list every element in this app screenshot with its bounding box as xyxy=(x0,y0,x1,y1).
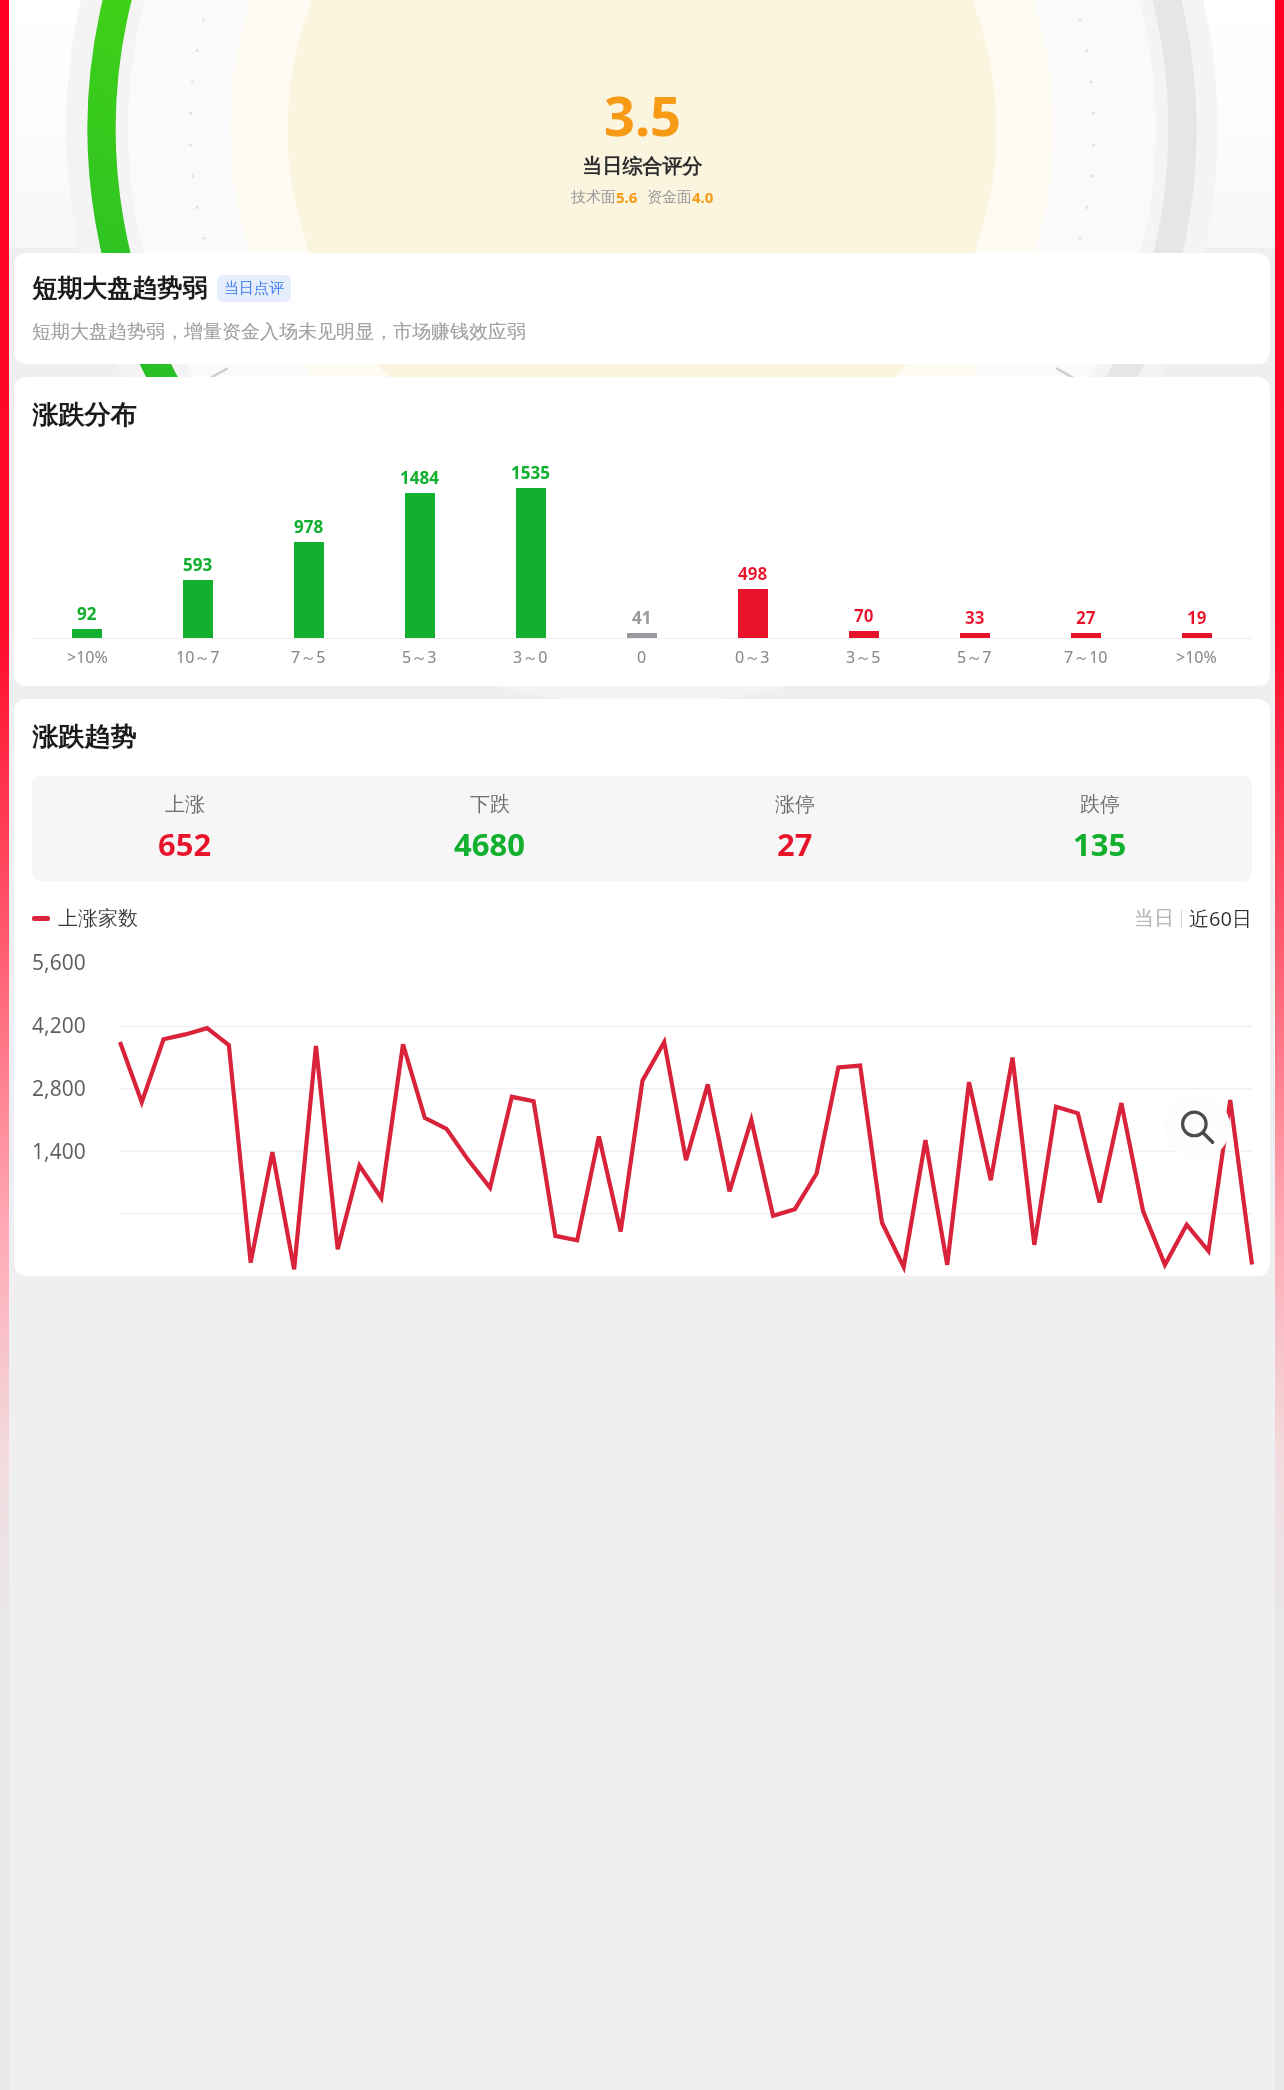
staticText: 近60日 xyxy=(1189,905,1252,932)
staticText: 19 xyxy=(1187,606,1207,629)
staticText: 41 xyxy=(632,606,652,629)
button[interactable]: 短期大盘趋势弱 xyxy=(14,253,1270,364)
staticText: 5.6 xyxy=(616,187,638,207)
staticText: >10% xyxy=(67,646,108,668)
staticText: 当日综合评分 xyxy=(582,154,702,179)
staticText: 10～7 xyxy=(176,646,220,668)
staticText: 资金面 xyxy=(647,188,692,207)
staticText: 3～5 xyxy=(846,646,881,668)
staticText: 7～5 xyxy=(291,646,326,668)
staticText: 498 xyxy=(738,562,768,585)
staticText: 5～3 xyxy=(402,646,437,668)
staticText: 1484 xyxy=(400,466,439,489)
staticText: 当日点评 xyxy=(224,279,284,298)
staticText: 135 xyxy=(1073,823,1127,865)
staticText: 7～10 xyxy=(1064,646,1108,668)
staticText: 2,800 xyxy=(32,1074,86,1103)
staticText: 4.0 xyxy=(692,187,714,207)
staticText: 短期大盘趋势弱，增量资金入场未见明显，市场赚钱效应弱 xyxy=(32,320,526,344)
staticText: >10% xyxy=(1176,646,1217,668)
button[interactable]: Zoom chart xyxy=(1164,1094,1230,1160)
staticText: 27 xyxy=(1076,606,1096,629)
staticText: 27 xyxy=(777,823,813,865)
staticText: 涨跌趋势 xyxy=(32,721,136,754)
staticText: 技术面 xyxy=(571,188,616,207)
staticText: 跌停 xyxy=(1080,792,1120,817)
staticText: 短期大盘趋势弱 xyxy=(32,273,207,304)
staticText: 92 xyxy=(77,602,97,625)
staticText: 涨跌分布 xyxy=(32,399,136,432)
staticText: 4,200 xyxy=(32,1011,86,1040)
staticText: 0～3 xyxy=(735,646,770,668)
staticText: 593 xyxy=(183,553,213,576)
staticText: 1,400 xyxy=(32,1137,86,1166)
staticText: 0 xyxy=(637,646,647,668)
staticText: 当日 xyxy=(1134,906,1174,931)
staticText: 70 xyxy=(854,604,874,627)
button[interactable]: 当日 xyxy=(1134,905,1252,932)
staticText: 3.5 xyxy=(604,78,681,152)
staticText: 3～0 xyxy=(513,646,548,668)
staticText: 33 xyxy=(965,606,985,629)
staticText: 978 xyxy=(294,515,324,538)
staticText: 下跌 xyxy=(470,792,510,817)
staticText: 1535 xyxy=(511,461,550,484)
staticText: 涨停 xyxy=(775,792,815,817)
staticText: 5～7 xyxy=(957,646,992,668)
staticText: 5,600 xyxy=(32,948,86,977)
staticText: 上涨家数 xyxy=(58,906,138,931)
staticText: 上涨 xyxy=(165,792,205,817)
staticText: 652 xyxy=(158,823,212,865)
staticText: 4680 xyxy=(454,823,525,865)
